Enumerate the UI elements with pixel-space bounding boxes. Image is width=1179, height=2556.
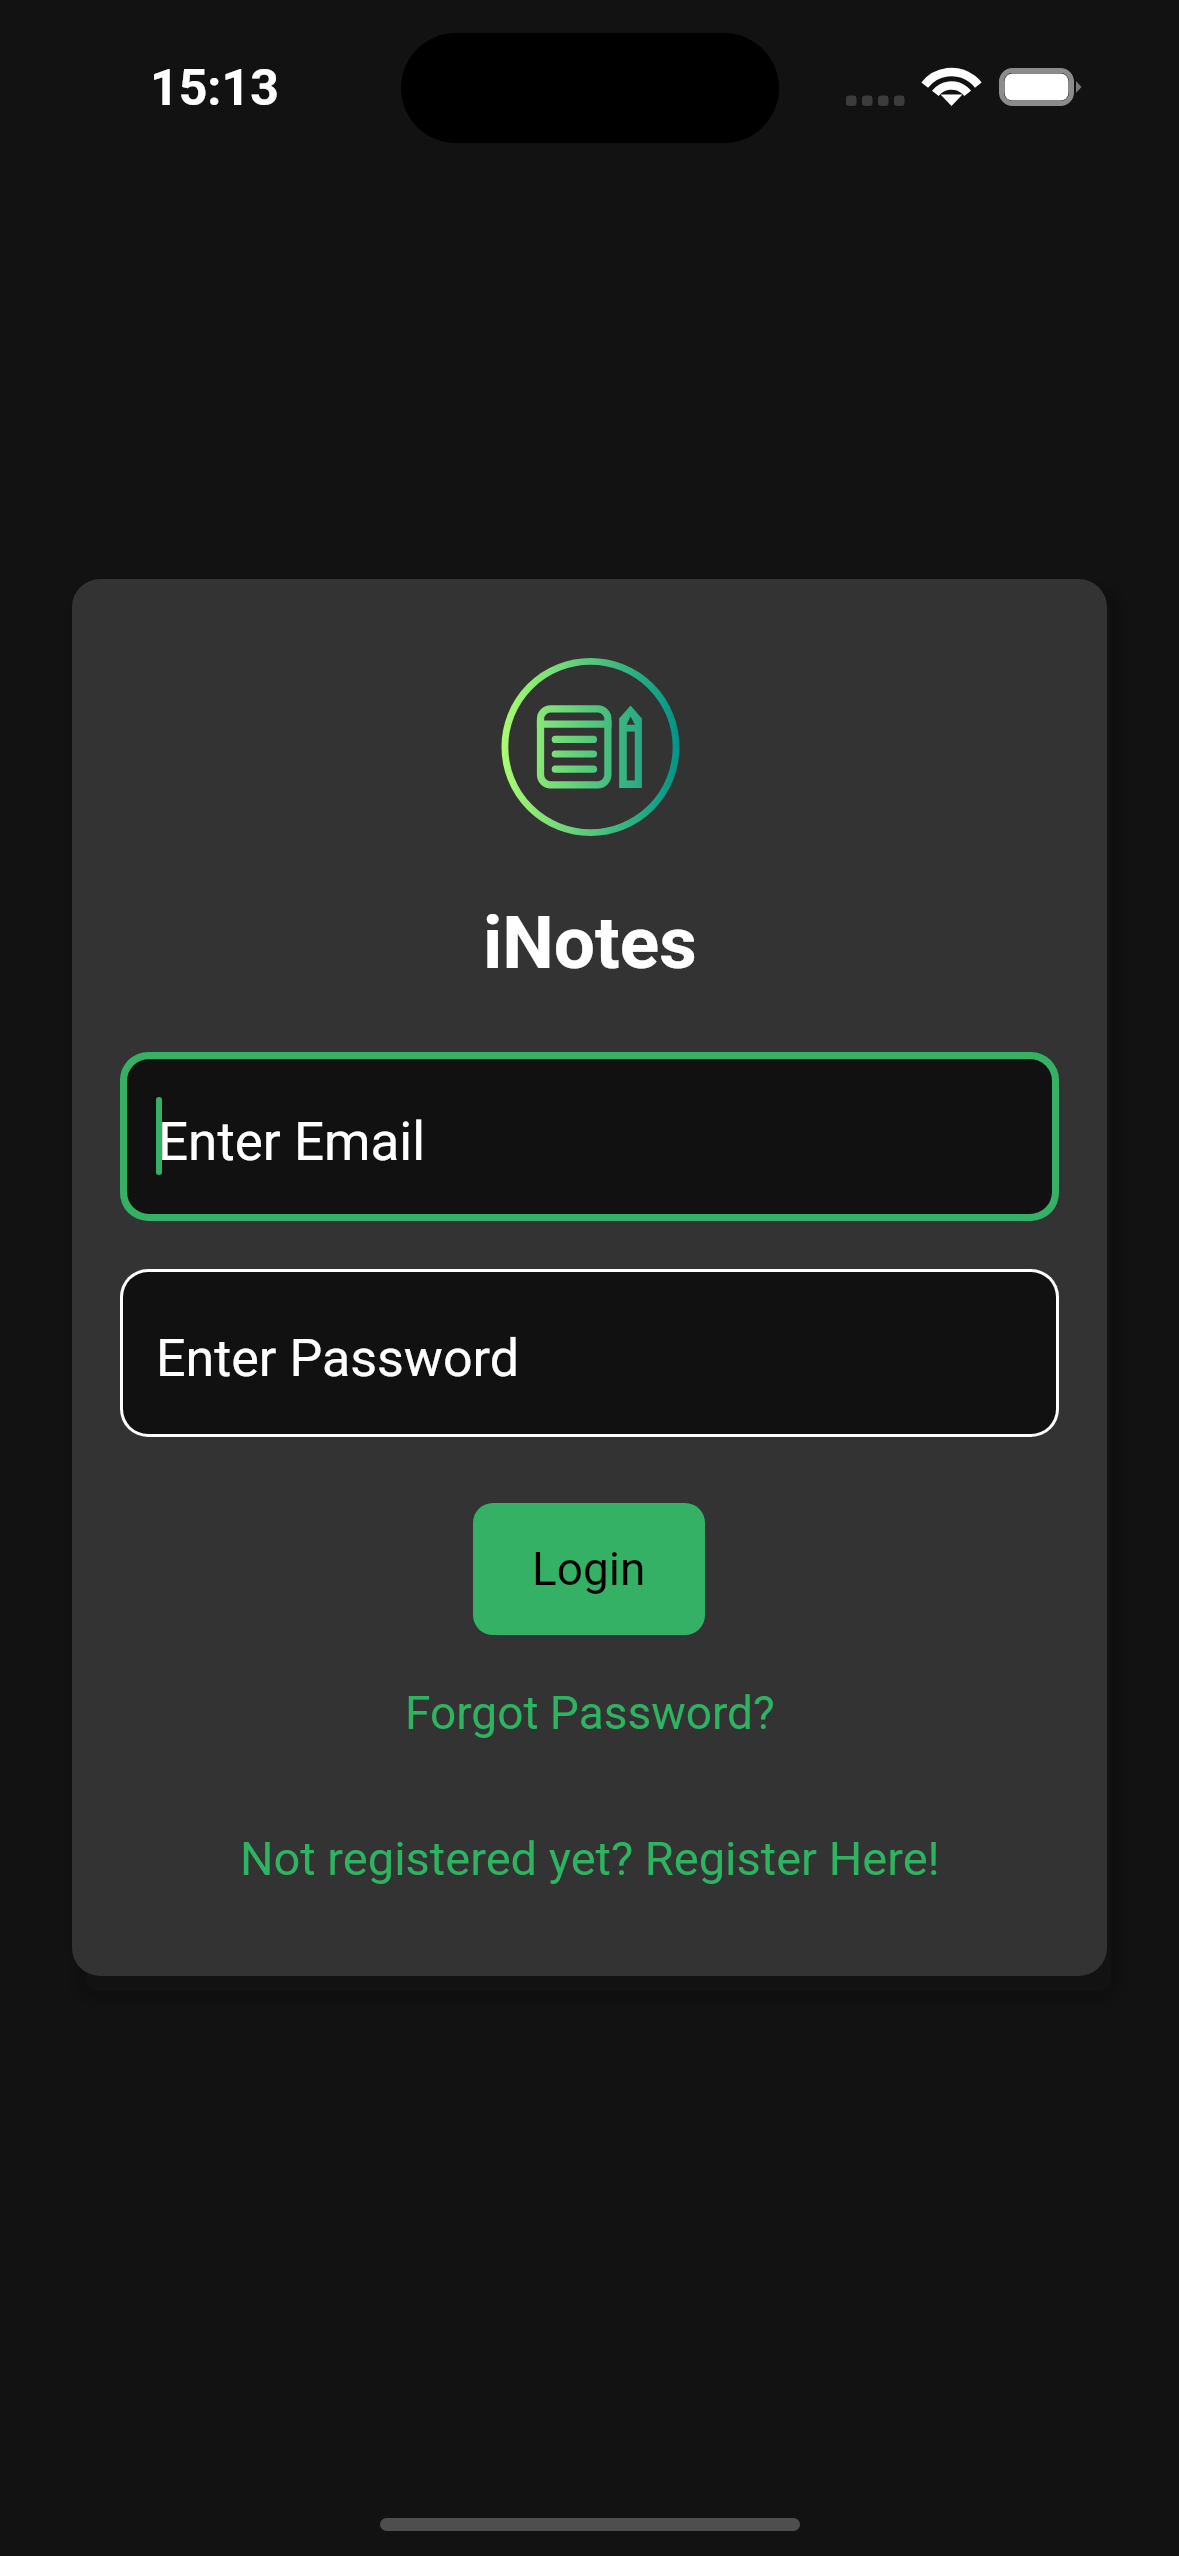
other: Network and battery status <box>840 55 1090 115</box>
staticText: Forgot Password? <box>405 1686 775 1740</box>
button[interactable]: Login <box>473 1503 705 1635</box>
staticText: Enter Password <box>156 1328 520 1389</box>
button[interactable]: Enter Email <box>120 1052 1059 1221</box>
staticText: Login <box>532 1542 646 1596</box>
staticText: Not registered yet? Register Here! <box>240 1831 940 1886</box>
staticText: iNotes <box>483 900 697 986</box>
button[interactable]: Not registered yet? Register Here! <box>72 1820 1107 1896</box>
other: iNotes logo <box>502 657 679 837</box>
button[interactable]: Enter Password <box>120 1269 1059 1437</box>
staticText: 15:13 <box>150 59 279 118</box>
button[interactable]: Forgot Password? <box>72 1675 1107 1751</box>
staticText: Enter Email <box>158 1111 426 1173</box>
